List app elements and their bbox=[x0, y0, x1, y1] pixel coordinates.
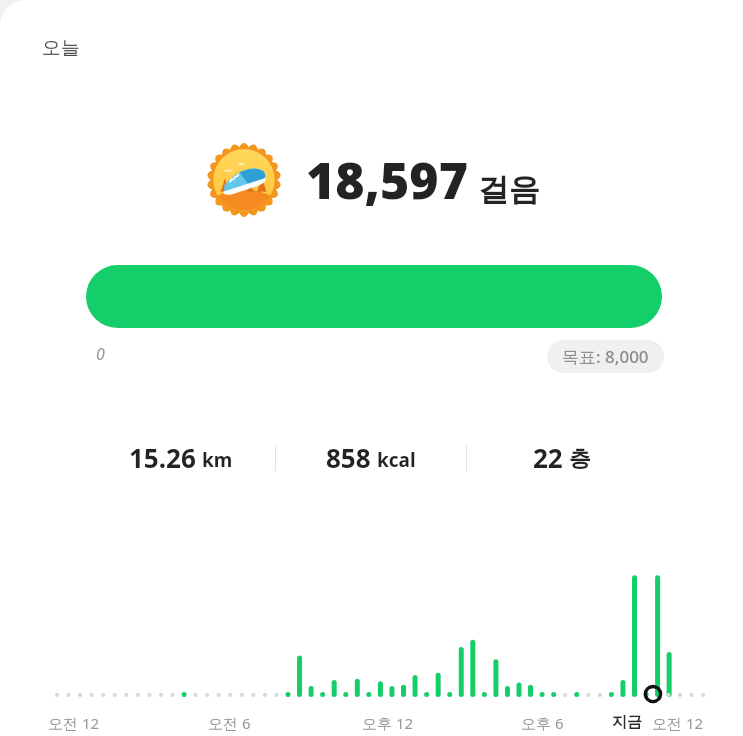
staticText: 오전 6 bbox=[208, 713, 251, 733]
staticText: 18,597 bbox=[306, 146, 468, 214]
button[interactable]: 목표: 8,000 bbox=[547, 340, 664, 373]
button[interactable]: 858 bbox=[276, 440, 466, 475]
staticText: 22 bbox=[533, 440, 563, 475]
staticText: 지금 bbox=[612, 713, 642, 732]
staticText: 858 bbox=[326, 440, 371, 475]
staticText: 오전 12 bbox=[652, 713, 704, 733]
button[interactable]: 오늘 bbox=[40, 34, 82, 62]
staticText: 걸음 bbox=[478, 170, 540, 209]
other: 걸음 수 배지 bbox=[204, 140, 284, 220]
staticText: 15.26 bbox=[129, 440, 196, 475]
staticText: 오후 12 bbox=[362, 713, 414, 733]
staticText: 오전 12 bbox=[48, 713, 100, 733]
staticText: 0 bbox=[96, 343, 105, 365]
button[interactable] bbox=[86, 265, 662, 328]
button[interactable]: 시간별 걸음 수 그래프 bbox=[40, 560, 703, 705]
staticText: 오늘 bbox=[42, 36, 80, 60]
staticText: 층 bbox=[569, 445, 591, 473]
staticText: 오후 6 bbox=[521, 713, 564, 733]
staticText: kcal bbox=[377, 447, 416, 473]
button[interactable]: 15.26 bbox=[86, 440, 275, 475]
staticText: km bbox=[202, 447, 233, 473]
staticText: 목표: 8,000 bbox=[562, 345, 649, 368]
button[interactable]: 22 bbox=[467, 440, 657, 475]
button[interactable]: 걸음 수 배지 bbox=[0, 140, 743, 220]
